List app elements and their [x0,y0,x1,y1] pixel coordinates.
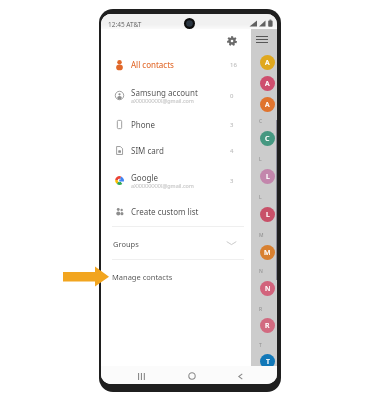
button[interactable]: Settings [224,33,240,49]
staticText: N [265,284,271,294]
staticText: L [266,210,270,220]
button[interactable]: SIM card [101,137,250,164]
staticText: M [264,248,271,258]
button[interactable]: R [260,318,275,333]
button[interactable]: Google [101,167,250,194]
staticText: aXXXXXXXXX@gmail.com [131,97,194,104]
staticText: L [266,172,270,182]
staticText: 3 [230,121,234,129]
button[interactable]: M [260,245,275,260]
button[interactable]: Samsung account [101,82,250,109]
staticText: A [265,58,270,68]
button[interactable]: A [260,55,275,70]
button[interactable]: Home [183,367,201,384]
staticText: Google [131,172,158,183]
staticText: aXXXXXXXXX@gmail.com [131,182,194,189]
staticText: C [259,118,263,125]
button[interactable]: Phone [101,111,250,138]
staticText: M [259,232,264,239]
staticText: N [259,268,263,275]
staticText: T [259,342,262,349]
staticText: 12:45 AT&T [108,20,142,29]
staticText: Groups [113,239,139,249]
button[interactable]: Menu [253,30,271,48]
staticText: L [259,194,262,201]
staticText: C [265,134,270,144]
button[interactable]: A [260,76,275,91]
staticText: R [265,321,270,331]
button[interactable]: Manage contacts [101,263,250,290]
staticText: 0 [230,92,234,100]
button[interactable]: L [260,207,275,222]
staticText: 3 [230,177,234,185]
staticText: All contacts [131,59,174,70]
button[interactable]: T [260,354,275,369]
staticText: Phone [131,119,156,130]
button[interactable]: Back [231,367,249,384]
staticText: 16 [230,61,237,69]
staticText: Create custom list [131,206,199,217]
staticText: R [259,306,263,313]
staticText: L [259,156,262,163]
staticText: A [265,79,270,89]
staticText: 4 [230,147,234,155]
button[interactable]: C [260,131,275,146]
staticText: Samsung account [131,87,198,98]
button[interactable]: L [260,169,275,184]
button[interactable]: A [260,97,275,112]
staticText: T [266,357,270,367]
button[interactable]: All contacts [101,51,250,78]
button[interactable]: Create custom list [101,198,250,225]
button[interactable]: N [260,281,275,296]
button[interactable]: Groups [101,230,250,256]
staticText: SIM card [131,145,164,156]
button[interactable]: Recents [132,367,150,384]
staticText: Manage contacts [112,272,173,282]
staticText: A [265,100,270,110]
